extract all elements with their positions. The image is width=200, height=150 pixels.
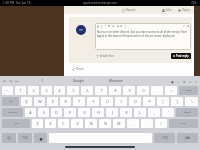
button[interactable]: Google — [73, 79, 84, 83]
button[interactable]: return — [176, 108, 198, 117]
button[interactable]: H — [92, 108, 104, 117]
button[interactable]: ?123 — [154, 133, 175, 143]
button[interactable]: ?123 — [18, 133, 32, 143]
button[interactable]: N — [99, 119, 111, 128]
button[interactable]: = — [165, 86, 177, 95]
button[interactable]: Report — [121, 8, 137, 12]
button[interactable]: 9 — [123, 86, 135, 95]
button[interactable]: keyboard option — [169, 78, 175, 84]
button[interactable]: B — [85, 119, 97, 128]
button[interactable]: caps lock — [2, 108, 23, 117]
button[interactable]: I — [115, 97, 127, 106]
button[interactable]: O — [129, 97, 141, 106]
button[interactable]: Y — [87, 97, 99, 106]
button[interactable]: ⚙ — [120, 25, 123, 28]
button[interactable]: W — [34, 97, 45, 106]
staticText: 7 — [100, 88, 103, 93]
staticText: B — [97, 25, 99, 28]
button[interactable]: [ — [157, 97, 169, 106]
button[interactable]: K — [120, 108, 132, 117]
button[interactable]: edit — [2, 78, 8, 84]
button[interactable]: “ — [104, 25, 107, 28]
button[interactable]: L — [134, 108, 146, 117]
button[interactable]: 2 — [28, 86, 39, 95]
button[interactable]: keyboard option — [187, 78, 193, 84]
button[interactable]: E — [47, 97, 58, 106]
button[interactable]: F — [64, 108, 76, 117]
button[interactable]: 7 — [95, 86, 107, 95]
button[interactable]: S — [38, 108, 49, 117]
button[interactable]: 3 — [41, 86, 52, 95]
button[interactable]: ☰ — [187, 25, 190, 28]
button[interactable]: I — [42, 79, 44, 83]
button[interactable]: C — [58, 119, 69, 128]
button[interactable]: ] — [171, 97, 183, 106]
button[interactable]: ⧉ — [116, 25, 119, 28]
button[interactable]: Like — [161, 8, 173, 12]
button[interactable]: T — [73, 97, 85, 106]
button[interactable]: edit — [8, 78, 14, 84]
button[interactable]: shift — [169, 119, 198, 128]
staticText: = — [170, 88, 173, 93]
button[interactable]: 5 — [67, 86, 79, 95]
button[interactable]: X — [45, 119, 56, 128]
button[interactable]: edit — [14, 78, 20, 84]
button[interactable]: Welcome — [109, 79, 123, 83]
button[interactable]: M — [113, 119, 125, 128]
button[interactable]: tab — [2, 97, 19, 106]
button[interactable]: Post reply — [171, 53, 191, 59]
button[interactable]: 1 — [15, 86, 26, 95]
button[interactable]: 0 — [137, 86, 149, 95]
button[interactable]: 6 — [81, 86, 93, 95]
staticText: 1 — [19, 88, 22, 93]
staticText: M — [117, 121, 121, 126]
button[interactable]: Attach files — [95, 54, 115, 58]
button[interactable]: D — [51, 108, 62, 117]
button[interactable]: ; — [148, 108, 160, 117]
button[interactable]: J — [106, 108, 118, 117]
staticText: ✂ — [15, 79, 19, 84]
staticText: / — [160, 121, 162, 126]
button[interactable]: ' — [162, 108, 174, 117]
button[interactable]: Q — [21, 97, 32, 106]
button[interactable]: V — [71, 119, 83, 128]
button[interactable]: keyboard option — [175, 78, 181, 84]
button[interactable]: ☰ — [108, 25, 111, 28]
button[interactable]: keyboard option — [193, 78, 199, 84]
button[interactable]: ~ — [2, 86, 13, 95]
staticText: I — [120, 99, 122, 104]
staticText: □ — [124, 25, 127, 28]
button[interactable]: , — [127, 119, 139, 128]
button[interactable]: shift — [2, 119, 30, 128]
button[interactable]: U — [101, 97, 113, 106]
button[interactable]: G — [78, 108, 90, 117]
button[interactable]: \ — [185, 97, 198, 106]
button[interactable]: / — [155, 119, 167, 128]
button[interactable]: keyboard option — [181, 78, 187, 84]
button[interactable]: Reply — [177, 8, 191, 12]
button[interactable]: 4 — [54, 86, 65, 95]
staticText: . — [147, 121, 148, 126]
button[interactable]: Share — [71, 66, 85, 72]
button[interactable]: delete — [179, 86, 198, 95]
button[interactable]: P — [143, 97, 155, 106]
button[interactable]: B — [96, 25, 99, 28]
button[interactable]: 8 — [109, 86, 121, 95]
button[interactable]: A — [25, 108, 36, 117]
button[interactable]: I — [100, 25, 103, 28]
button[interactable]: Z — [32, 119, 43, 128]
button[interactable]: . — [141, 119, 153, 128]
button[interactable]: ↩ — [183, 25, 186, 28]
button[interactable]: ⬤ — [34, 133, 47, 143]
button[interactable]: - — [151, 86, 163, 95]
staticText: me — [79, 28, 83, 32]
button[interactable]: ⌨ — [177, 133, 198, 143]
button[interactable]: ☺ — [2, 133, 16, 143]
button[interactable]: □ — [124, 25, 127, 28]
staticText: H — [97, 110, 100, 115]
button[interactable]: ≡ — [112, 25, 115, 28]
staticText: delete — [185, 89, 192, 92]
button[interactable]: R — [60, 97, 71, 106]
staticText: return — [184, 111, 191, 114]
